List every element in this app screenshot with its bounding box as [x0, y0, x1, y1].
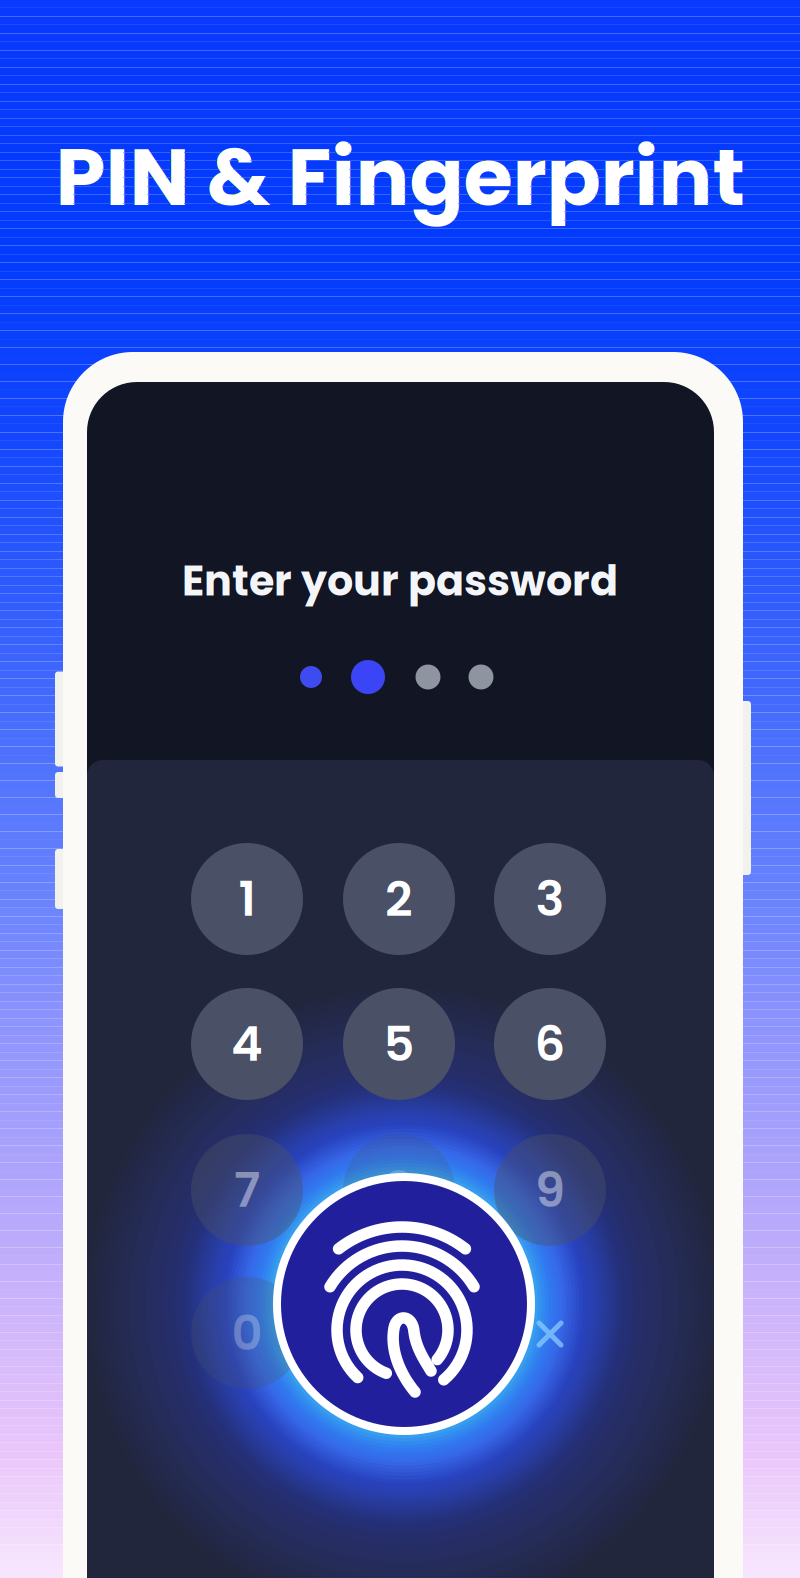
- staticText: 8: [383, 1156, 414, 1224]
- button[interactable]: 4: [191, 988, 303, 1100]
- button[interactable]: 8: [343, 1134, 455, 1246]
- staticText: 1: [238, 865, 255, 933]
- staticText: 9: [535, 1156, 565, 1224]
- button[interactable]: 1: [191, 843, 303, 955]
- staticText: Enter your password: [182, 552, 618, 610]
- staticText: 5: [383, 1010, 414, 1078]
- staticText: 7: [234, 1156, 260, 1224]
- staticText: 3: [535, 865, 564, 933]
- button[interactable]: Unlock with fingerprint: [273, 1173, 535, 1435]
- button[interactable]: 0: [191, 1277, 303, 1389]
- button[interactable]: Clear: [535, 1319, 565, 1349]
- staticText: 2: [385, 865, 413, 933]
- staticText: 4: [231, 1010, 263, 1078]
- button[interactable]: 2: [343, 843, 455, 955]
- staticText: 0: [231, 1299, 262, 1367]
- button[interactable]: 3: [494, 843, 606, 955]
- button[interactable]: 5: [343, 988, 455, 1100]
- button[interactable]: 6: [494, 988, 606, 1100]
- button[interactable]: 9: [494, 1134, 606, 1246]
- staticText: 6: [534, 1010, 565, 1078]
- button[interactable]: 7: [191, 1134, 303, 1246]
- staticText: PIN & Fingerprint: [55, 121, 744, 233]
